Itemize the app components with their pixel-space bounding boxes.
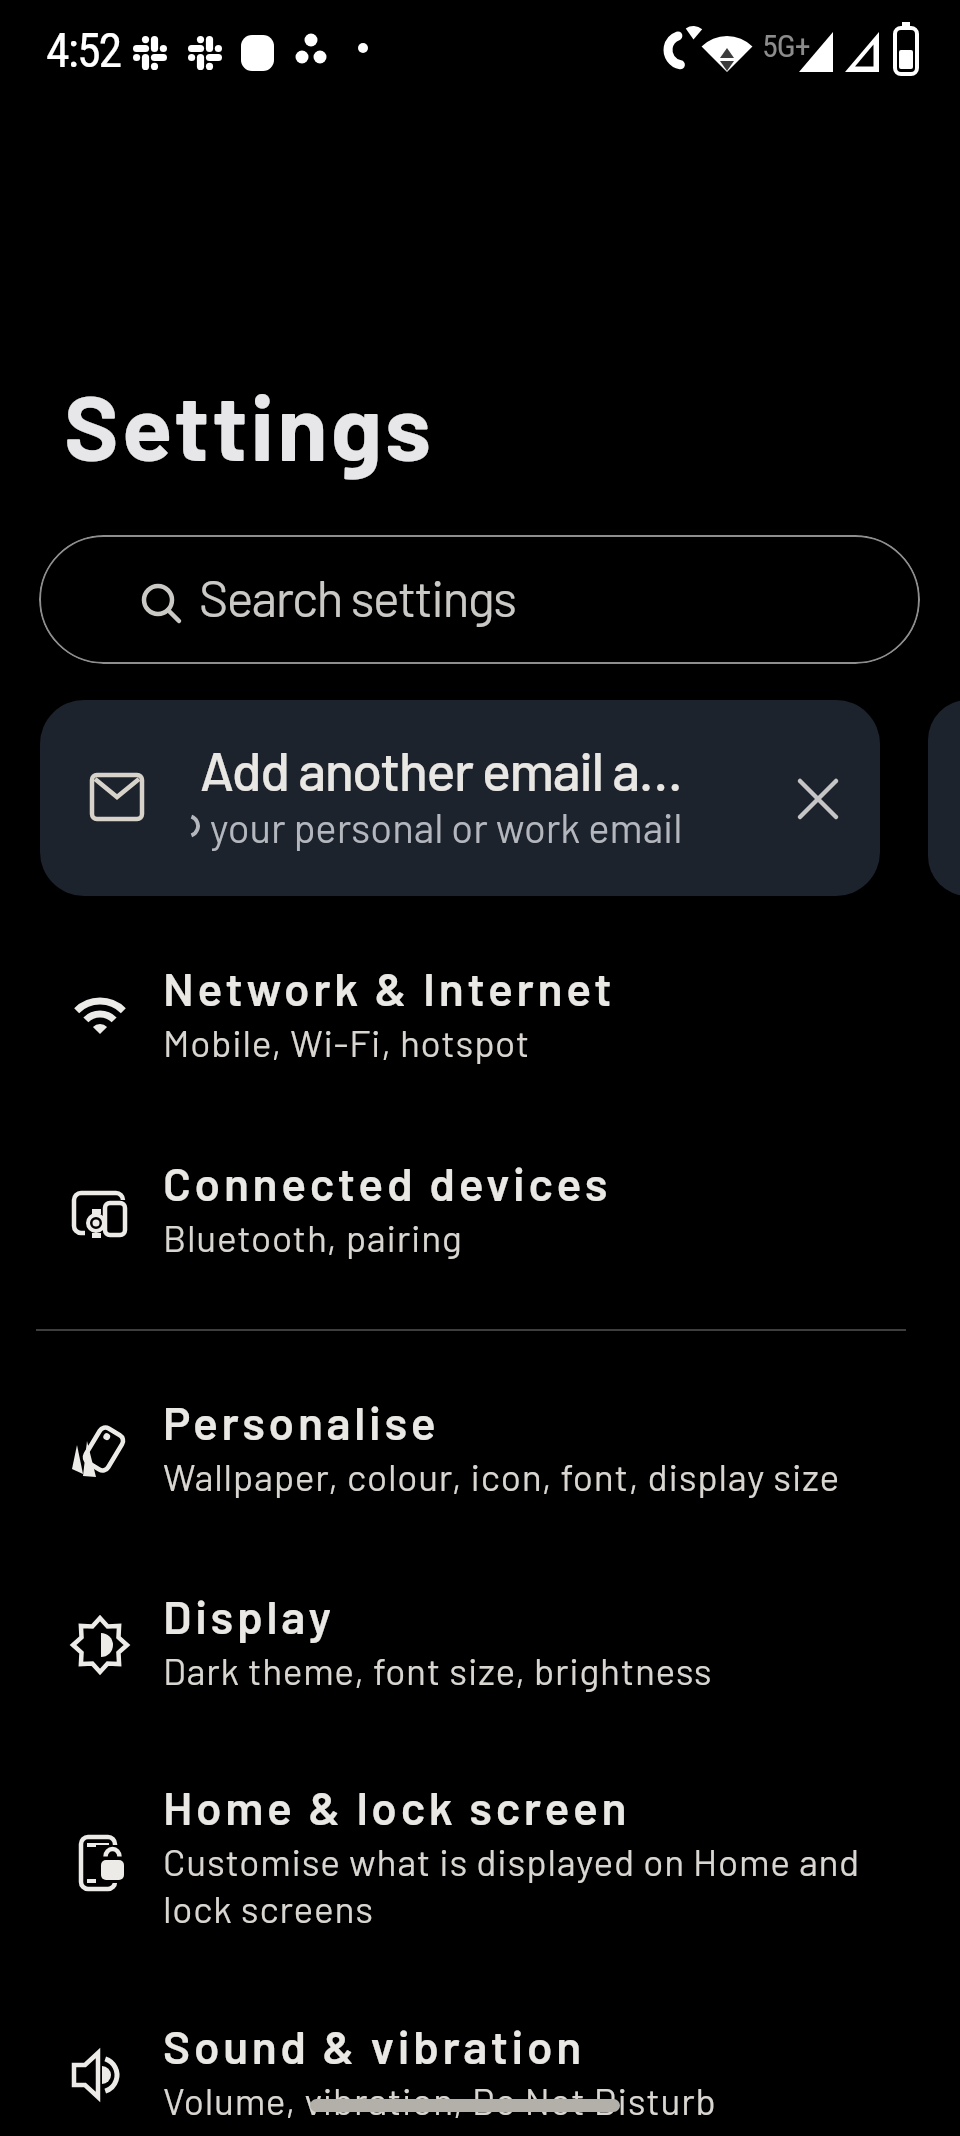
staticText: your personal or work email [210,803,683,851]
staticText: Home & lock screen [163,1779,631,1834]
staticText: Mobile, Wi-Fi, hotspot [163,1020,531,1064]
staticText: Settings [64,369,435,479]
button[interactable]: Network & Internet [0,930,960,1120]
staticText: Add another email a… [200,737,682,802]
staticText: 4:52 [46,22,121,78]
staticText: Personalise [163,1394,440,1449]
staticText: Dark theme, font size, brightness [163,1648,713,1692]
staticText: Display [163,1588,335,1643]
button[interactable]: Personalise [0,1364,960,1554]
staticText: Network & Internet [163,960,616,1015]
staticText: Bluetooth, pairing [163,1215,463,1259]
button[interactable] [798,779,838,819]
staticText: Wallpaper, colour, icon, font, display s… [163,1454,840,1498]
staticText: lock screens [163,1886,374,1930]
staticText: Search settings [199,567,516,627]
button[interactable]: Sound & vibration [0,1988,960,2136]
button[interactable]: Add another email a… [40,700,880,896]
staticText: Connected devices [163,1155,612,1210]
button[interactable]: Connected devices [0,1125,960,1315]
staticText: Volume, vibration, Do Not Disturb [163,2078,717,2122]
button[interactable]: Display [0,1558,960,1748]
button[interactable]: Search settings [39,535,920,664]
staticText: Customise what is displayed on Home and [163,1839,861,1883]
button[interactable]: Home & lock screen [0,1749,960,1985]
staticText: 5G+ [762,27,810,65]
staticText: Sound & vibration [163,2018,586,2073]
